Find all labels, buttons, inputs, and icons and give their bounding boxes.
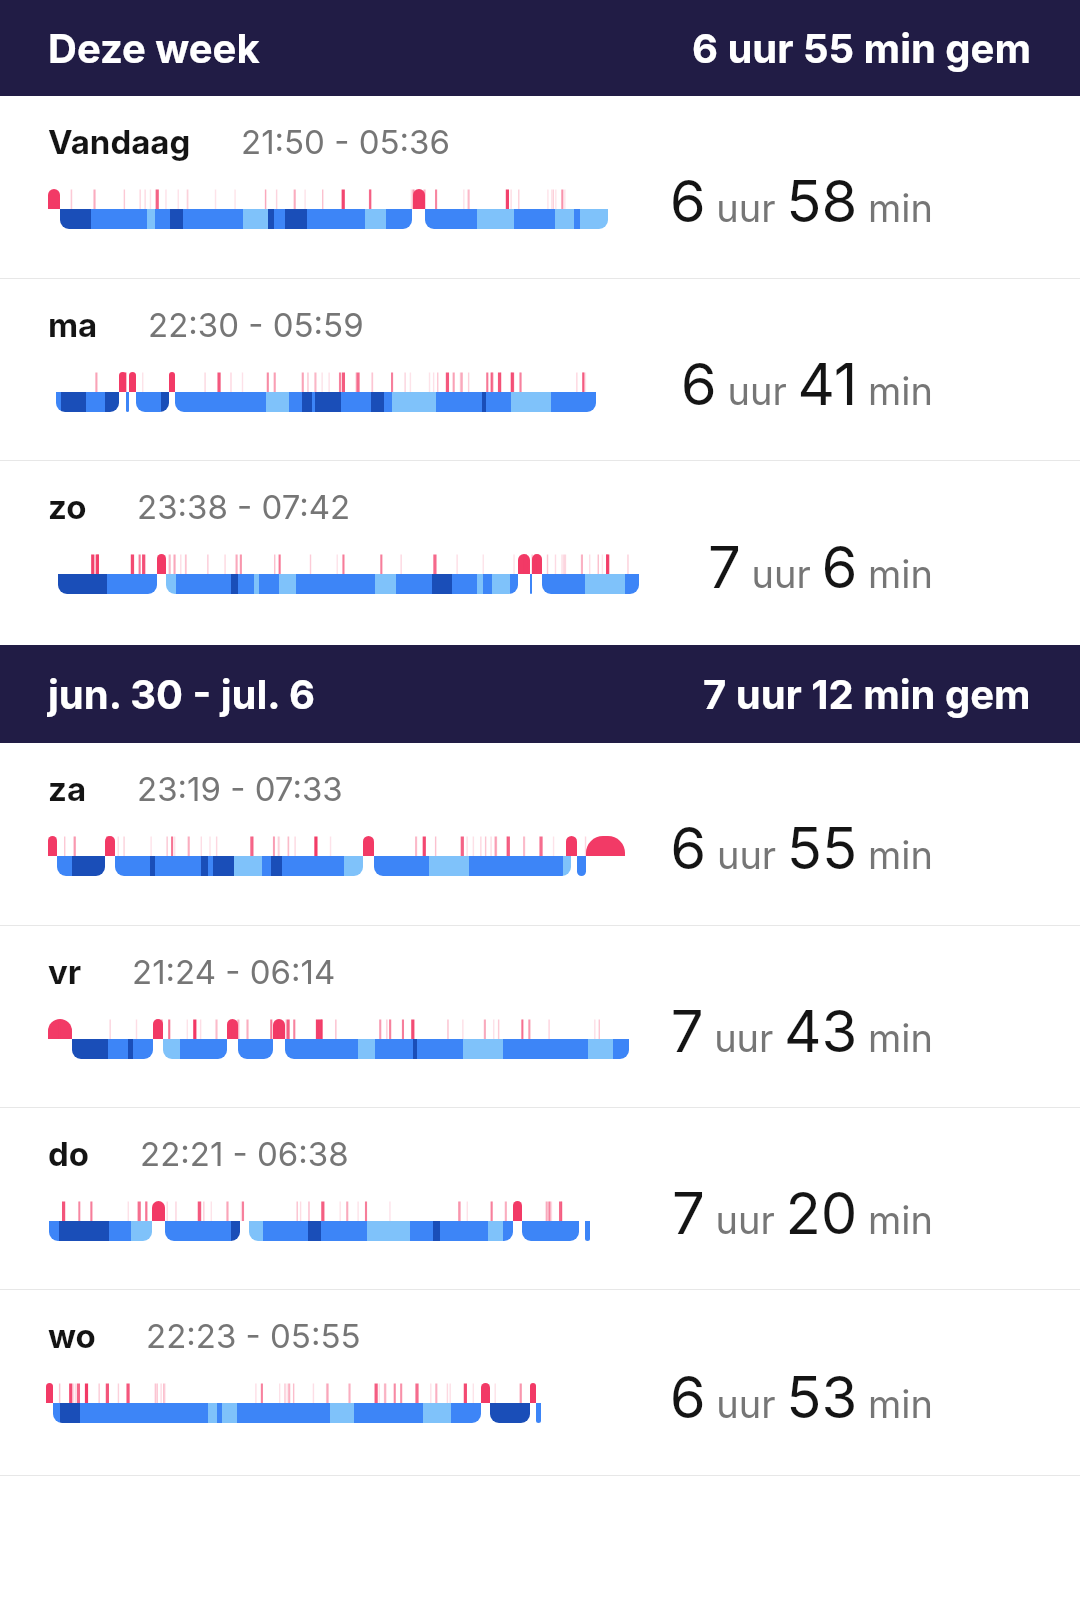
staticText: 6 uur 53 min xyxy=(669,1362,933,1432)
staticText: za xyxy=(48,769,87,809)
button[interactable]: jun. 30 - jul. 6 xyxy=(0,645,1080,743)
staticText: 6 uur 41 min xyxy=(680,349,933,419)
staticText: Vandaag xyxy=(48,122,191,162)
staticText: 22:23 - 05:55 xyxy=(146,1316,361,1356)
button[interactable]: Vandaag xyxy=(0,96,1080,278)
staticText: jun. 30 - jul. 6 xyxy=(48,670,315,718)
staticText: do xyxy=(48,1134,90,1174)
button[interactable]: ma xyxy=(0,279,1080,460)
button[interactable]: za xyxy=(0,743,1080,925)
staticText: vr xyxy=(48,952,82,992)
staticText: 7 uur 43 min xyxy=(670,996,933,1066)
button[interactable]: zo xyxy=(0,461,1080,645)
staticText: 21:24 - 06:14 xyxy=(132,952,336,992)
button[interactable]: do xyxy=(0,1108,1080,1289)
staticText: 22:30 - 05:59 xyxy=(148,305,364,345)
staticText: 6 uur 58 min xyxy=(669,166,933,236)
staticText: 6 uur 55 min gem xyxy=(692,24,1031,72)
staticText: ma xyxy=(48,305,98,345)
button[interactable]: Deze week xyxy=(0,0,1080,96)
staticText: Deze week xyxy=(48,24,260,72)
staticText: 6 uur 55 min xyxy=(670,813,933,883)
staticText: zo xyxy=(48,487,87,527)
staticText: 7 uur 20 min xyxy=(671,1178,933,1248)
staticText: 7 uur 12 min gem xyxy=(703,670,1031,718)
staticText: wo xyxy=(48,1316,96,1356)
button[interactable]: vr xyxy=(0,926,1080,1107)
staticText: 23:38 - 07:42 xyxy=(137,487,351,527)
staticText: 22:21 - 06:38 xyxy=(140,1134,349,1174)
button[interactable]: wo xyxy=(0,1290,1080,1475)
staticText: 7 uur 6 min xyxy=(707,532,933,602)
staticText: 23:19 - 07:33 xyxy=(137,769,343,809)
staticText: 21:50 - 05:36 xyxy=(241,122,450,162)
